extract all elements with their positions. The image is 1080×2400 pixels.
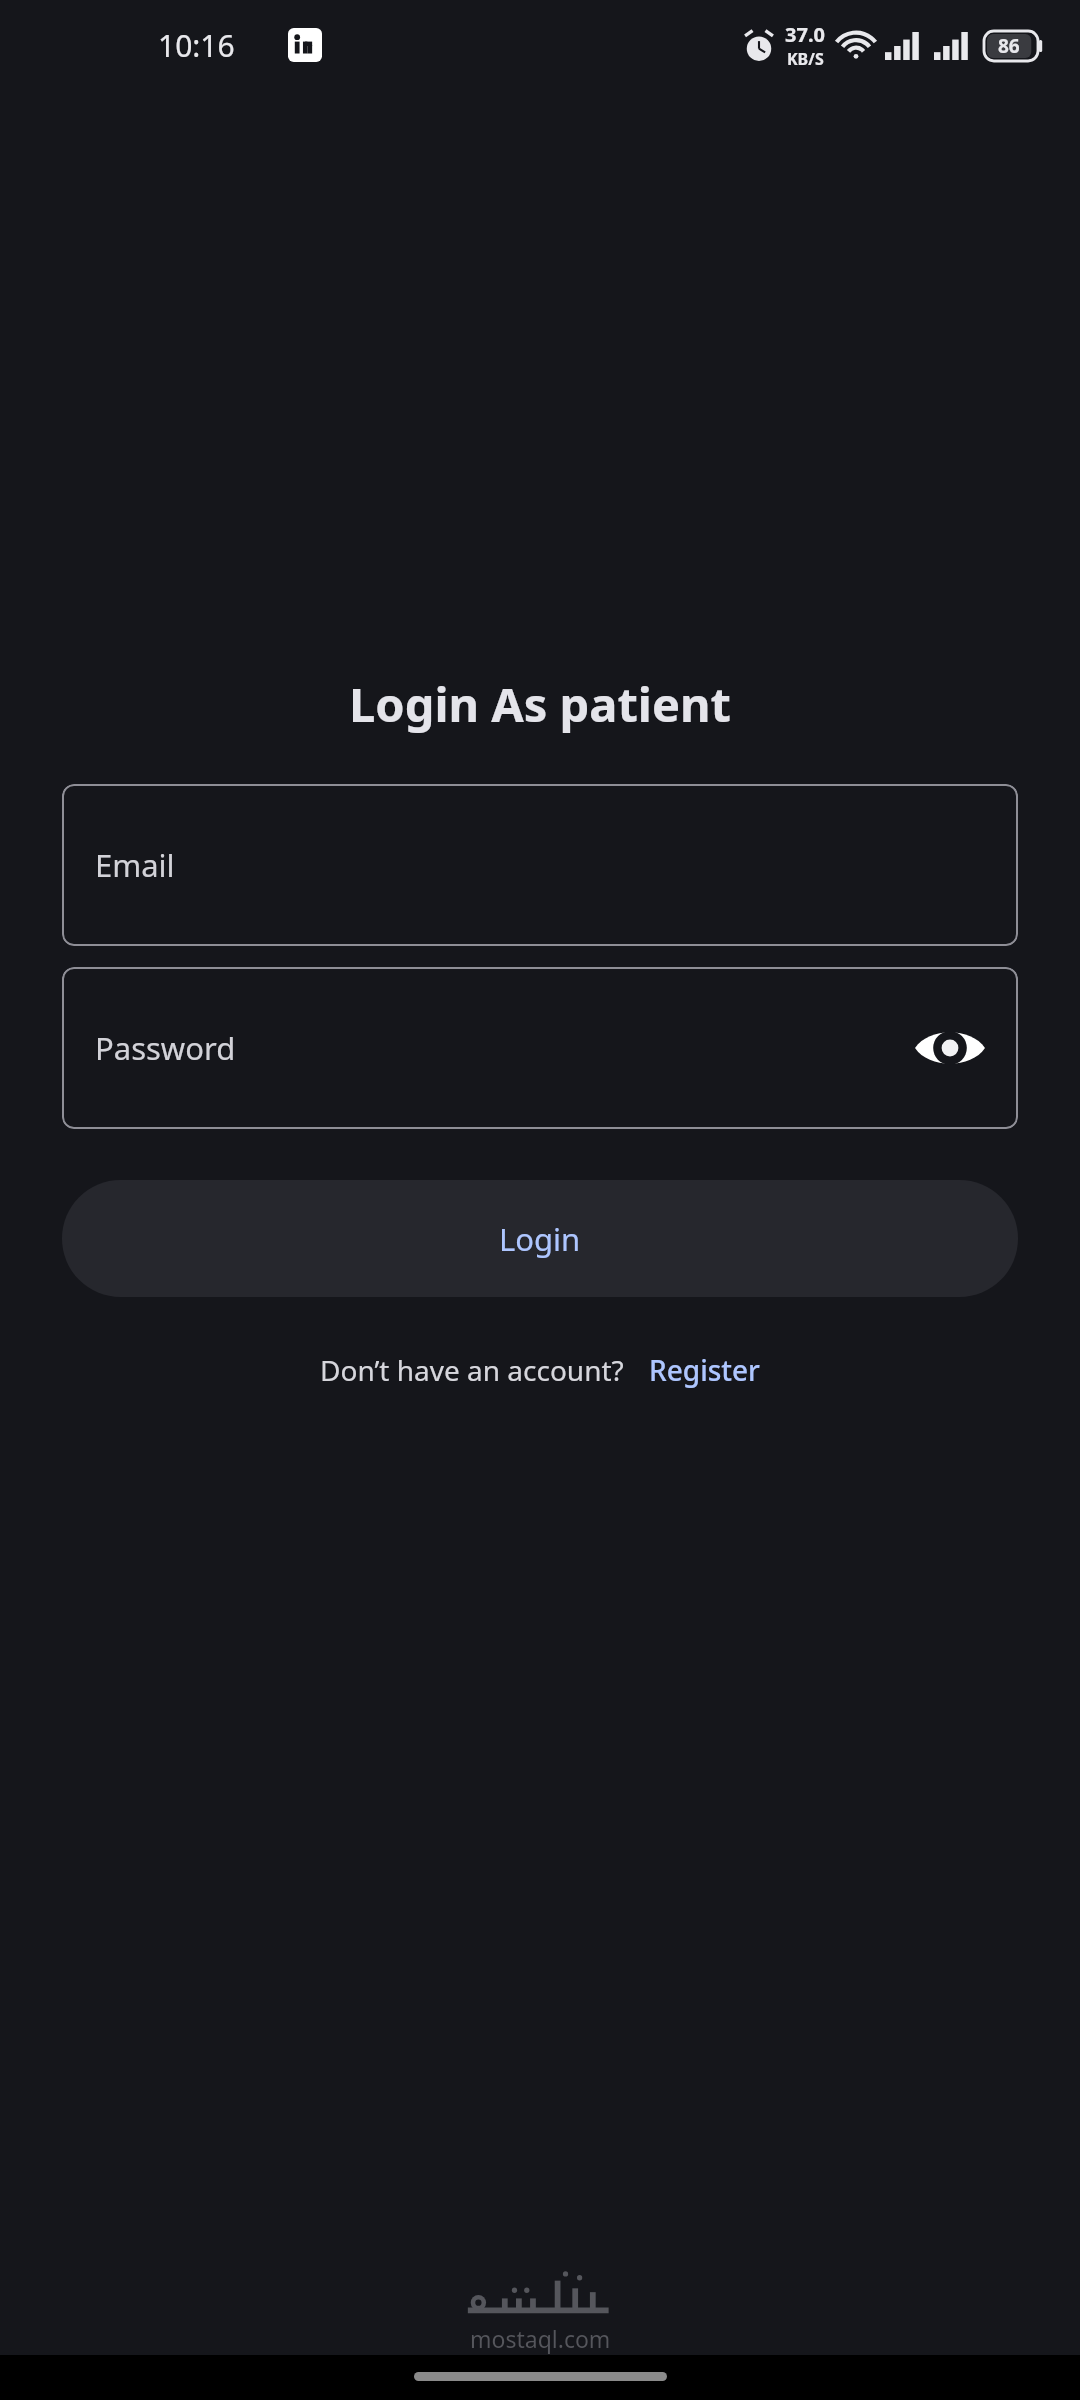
button[interactable]: Show password bbox=[912, 1022, 988, 1074]
staticText: mostaql.com bbox=[470, 2323, 611, 2354]
staticText: Login As patient bbox=[349, 672, 731, 736]
staticText: 37.0 bbox=[785, 21, 825, 48]
button[interactable]: Password bbox=[62, 967, 1018, 1129]
staticText: Email bbox=[95, 844, 175, 886]
button[interactable]: Register bbox=[649, 1351, 760, 1389]
staticText: Don’t have an account? bbox=[320, 1351, 624, 1389]
staticText: Register bbox=[649, 1351, 760, 1389]
staticText: Password bbox=[95, 1027, 236, 1069]
staticText: KB/S bbox=[787, 48, 824, 70]
button[interactable]: Email bbox=[62, 784, 1018, 946]
staticText: 86 bbox=[998, 33, 1020, 59]
staticText: 10:16 bbox=[158, 25, 235, 66]
button[interactable]: Login bbox=[62, 1180, 1018, 1297]
staticText: Login bbox=[499, 1218, 581, 1260]
